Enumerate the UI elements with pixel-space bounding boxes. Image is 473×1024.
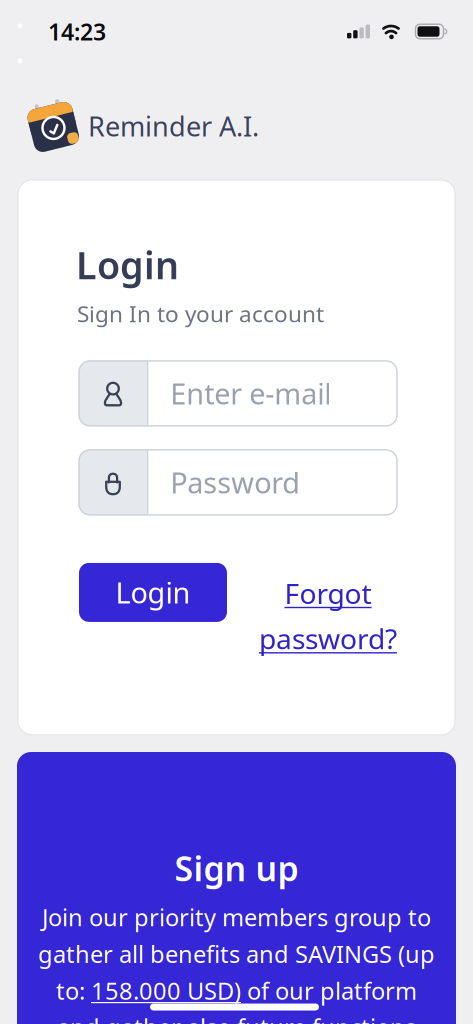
staticText: Login (115, 573, 190, 612)
button[interactable]: Forgot (259, 574, 397, 657)
staticText: and gather also future functions (57, 1011, 416, 1024)
staticText: gather all benefits and SAVINGS (up (38, 938, 435, 970)
button[interactable]: Password (79, 450, 397, 515)
staticText: Reminder A.I. (88, 108, 259, 144)
staticText: Sign In to your account (77, 298, 324, 329)
staticText: 14:23 (48, 16, 106, 47)
staticText: Forgot (284, 574, 371, 612)
staticText: Sign up (174, 845, 298, 891)
button[interactable]: Sign up (17, 752, 456, 1024)
staticText: password? (259, 619, 397, 657)
staticText: Login (76, 239, 179, 290)
staticText: Join our priority members group to (42, 901, 431, 933)
staticText: Password (170, 463, 300, 502)
staticText: to: 158.000 USD) of our platform (56, 974, 417, 1006)
button[interactable]: Login (79, 563, 227, 622)
button[interactable]: Enter e-mail (79, 361, 397, 426)
staticText: Enter e-mail (170, 374, 331, 413)
